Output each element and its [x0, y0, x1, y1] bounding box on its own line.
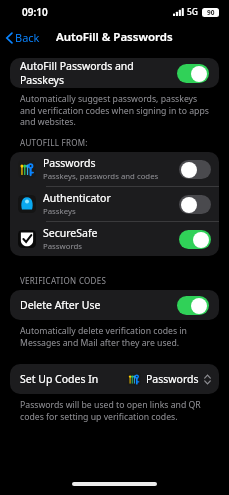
- button[interactable]: SecureSafe: [10, 222, 219, 256]
- staticText: Back: [15, 30, 40, 45]
- staticText: AUTOFILL FROM:: [20, 137, 88, 148]
- button[interactable]: AutoFill Passwords and Passkeys: [10, 58, 219, 88]
- staticText: AutoFill Passwords and Passkeys: [20, 59, 177, 87]
- button[interactable]: Toggle on: [177, 64, 209, 83]
- button[interactable]: Set Up Codes In: [10, 364, 219, 394]
- button[interactable]: Passwords: [10, 152, 219, 186]
- staticText: Passwords: [146, 372, 199, 386]
- button[interactable]: Delete After Use: [10, 290, 219, 320]
- staticText: 5G: [187, 6, 199, 18]
- button[interactable]: Authenticator: [10, 187, 219, 221]
- button[interactable]: Toggle off: [179, 195, 211, 214]
- staticText: Passwords will be used to open links and…: [20, 399, 211, 423]
- staticText: Automatically delete verification codes …: [20, 325, 211, 349]
- staticText: AutoFill & Passwords: [56, 29, 173, 45]
- staticText: Passkeys, passwords and codes: [43, 171, 159, 182]
- staticText: SecureSafe: [43, 226, 98, 240]
- staticText: VERIFICATION CODES: [20, 275, 107, 286]
- button[interactable]: Back: [0, 27, 46, 48]
- button[interactable]: Toggle on: [179, 230, 211, 249]
- staticText: Passwords: [43, 241, 82, 252]
- button[interactable]: Toggle on: [177, 296, 209, 315]
- button[interactable]: Toggle off: [179, 160, 211, 179]
- other: Choose: [204, 374, 211, 385]
- staticText: 90: [207, 8, 215, 17]
- staticText: 09:10: [22, 5, 48, 19]
- staticText: Automatically suggest passwords, passkey…: [20, 93, 211, 128]
- staticText: Set Up Codes In: [20, 372, 127, 386]
- staticText: Delete After Use: [20, 298, 177, 312]
- staticText: Passwords: [43, 156, 96, 170]
- staticText: Authenticator: [43, 191, 111, 205]
- staticText: Passkeys: [43, 206, 76, 217]
